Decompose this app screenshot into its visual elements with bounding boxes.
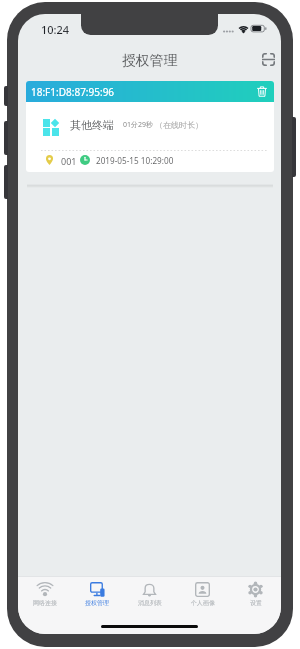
button[interactable]: Scan QR code [257, 48, 279, 70]
staticText: 设置 [250, 599, 262, 607]
staticText: 授权管理 [85, 599, 109, 607]
staticText: 01分29秒 [123, 120, 154, 130]
staticText: 消息列表 [138, 599, 162, 607]
button[interactable]: 消息列表 [123, 578, 176, 612]
button[interactable]: 设置 [229, 578, 281, 612]
staticText: 18:F1:D8:87:95:96 [31, 85, 115, 99]
staticText: 2019-05-15 10:29:00 [96, 155, 174, 166]
button[interactable]: 个人画像 [176, 578, 229, 612]
staticText: 10:24 [41, 22, 70, 37]
staticText: 其他终端 [70, 118, 114, 132]
staticText: 授权管理 [122, 52, 178, 69]
button[interactable]: 18:F1:D8:87:95:96 [26, 81, 274, 172]
button[interactable]: 授权管理 [71, 578, 123, 612]
button[interactable]: 网络连接 [19, 578, 71, 612]
staticText: （在线时长） [155, 120, 203, 130]
staticText: 个人画像 [191, 599, 215, 607]
staticText: 网络连接 [33, 599, 57, 607]
staticText: 001 [61, 155, 77, 167]
button[interactable]: Delete [253, 83, 270, 100]
